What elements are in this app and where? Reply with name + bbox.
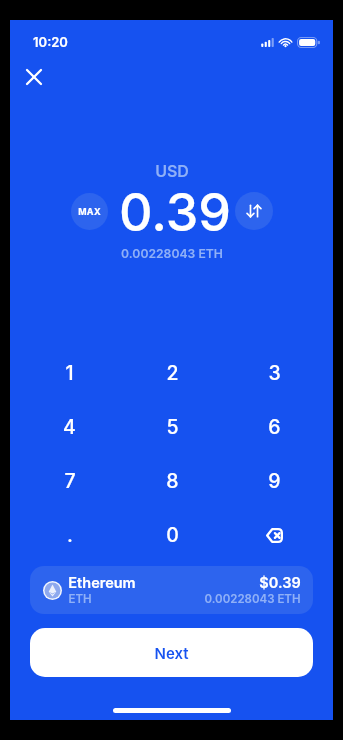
- staticText: 10:20: [33, 34, 68, 50]
- staticText: 8: [166, 469, 179, 493]
- staticText: ETH: [68, 592, 92, 606]
- staticText: USD: [155, 161, 189, 180]
- button[interactable]: 0: [121, 508, 223, 562]
- button[interactable]: 2: [121, 346, 223, 400]
- staticText: 0.00228043 ETH: [204, 592, 301, 606]
- staticText: 0: [166, 523, 179, 547]
- button[interactable]: Close: [12, 55, 56, 99]
- button[interactable]: MAX: [71, 193, 108, 230]
- button[interactable]: 1: [18, 346, 121, 400]
- staticText: 3: [268, 361, 281, 385]
- button[interactable]: 9: [223, 454, 325, 508]
- staticText: Next: [154, 644, 189, 662]
- staticText: 0.39: [119, 181, 231, 241]
- staticText: MAX: [78, 206, 101, 217]
- button[interactable]: 6: [223, 400, 325, 454]
- staticText: $0.39: [259, 574, 301, 592]
- staticText: Ethereum: [68, 574, 136, 592]
- staticText: 0.00228043 ETH: [121, 246, 223, 261]
- button[interactable]: Next: [30, 628, 313, 677]
- button[interactable]: 4: [18, 400, 121, 454]
- button[interactable]: Switch currency: [235, 192, 273, 230]
- button[interactable]: Backspace: [223, 508, 325, 562]
- staticText: 4: [63, 415, 76, 439]
- button[interactable]: 7: [18, 454, 121, 508]
- staticText: 1: [65, 361, 74, 385]
- button[interactable]: 8: [121, 454, 223, 508]
- staticText: 5: [166, 415, 179, 439]
- button[interactable]: 5: [121, 400, 223, 454]
- staticText: 7: [64, 469, 76, 493]
- button[interactable]: .: [18, 508, 121, 562]
- staticText: 9: [268, 469, 281, 493]
- staticText: 6: [268, 415, 281, 439]
- button[interactable]: Ethereum: [30, 566, 313, 614]
- staticText: .: [67, 523, 73, 547]
- button[interactable]: 3: [223, 346, 325, 400]
- staticText: 2: [166, 361, 179, 385]
